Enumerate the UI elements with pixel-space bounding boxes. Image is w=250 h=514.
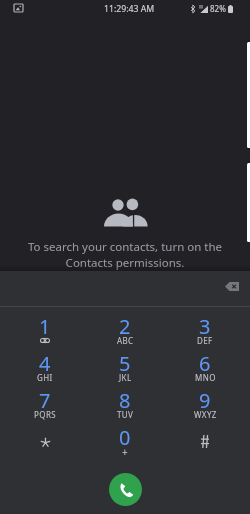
staticText: WXYZ bbox=[194, 409, 217, 420]
staticText: DEF bbox=[197, 335, 213, 346]
staticText: MNO bbox=[195, 372, 216, 383]
button[interactable]: Call bbox=[109, 473, 142, 506]
staticText: 3 bbox=[199, 313, 211, 340]
staticText: TUV bbox=[117, 409, 134, 420]
staticText: + bbox=[122, 445, 128, 459]
staticText: 2 bbox=[119, 313, 131, 340]
staticText: 6 bbox=[199, 350, 211, 377]
button[interactable]: Backspace bbox=[219, 273, 245, 299]
staticText: 1 bbox=[39, 313, 51, 340]
staticText: To search your contacts, turn on the Con… bbox=[0, 239, 250, 270]
staticText: GHI bbox=[37, 372, 53, 383]
staticText: 82% bbox=[210, 3, 226, 14]
button[interactable]: 4 bbox=[5, 353, 85, 390]
staticText: PQRS bbox=[34, 409, 57, 420]
button[interactable]: 1 bbox=[5, 316, 85, 353]
staticText: 9 bbox=[199, 387, 211, 414]
staticText: 4 bbox=[39, 350, 51, 377]
button[interactable] bbox=[165, 427, 245, 464]
staticText: 7 bbox=[39, 387, 51, 414]
staticText: ABC bbox=[117, 335, 134, 346]
staticText: 8 bbox=[119, 387, 131, 414]
button[interactable]: 0 bbox=[85, 427, 165, 464]
button[interactable]: 9 bbox=[165, 390, 245, 427]
button[interactable]: 5 bbox=[85, 353, 165, 390]
button[interactable]: 3 bbox=[165, 316, 245, 353]
staticText: 0 bbox=[119, 424, 131, 451]
staticText: 5 bbox=[119, 350, 131, 377]
button[interactable]: 2 bbox=[85, 316, 165, 353]
staticText: 11:29:43 AM bbox=[104, 3, 155, 15]
button[interactable]: 8 bbox=[85, 390, 165, 427]
button[interactable]: 6 bbox=[165, 353, 245, 390]
staticText: JKL bbox=[119, 372, 132, 383]
button[interactable] bbox=[5, 427, 85, 464]
button[interactable]: 7 bbox=[5, 390, 85, 427]
